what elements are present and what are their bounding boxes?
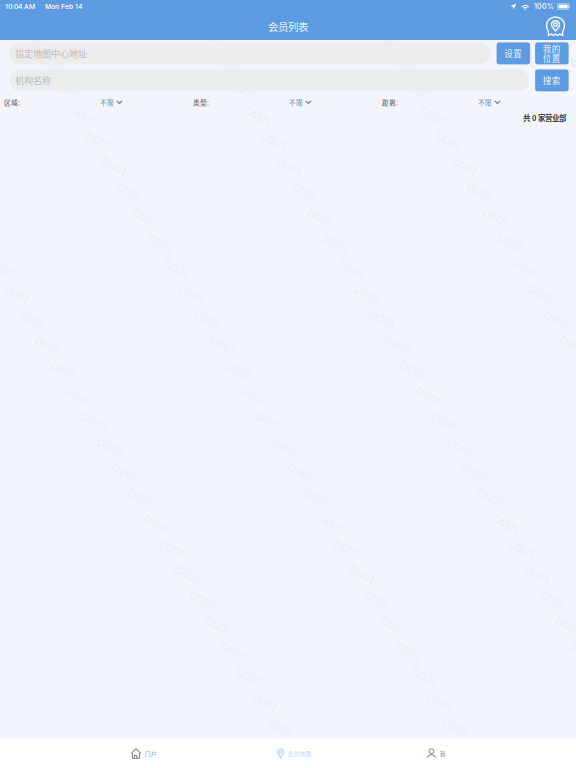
staticText: D001 (419, 109, 445, 122)
staticText: D001 (563, 58, 576, 71)
button[interactable]: 我的 (535, 42, 569, 64)
staticText: 共 0 家营业部 (523, 112, 566, 123)
staticText: D001 (322, 236, 348, 250)
staticText: D001 (244, 109, 270, 122)
staticText: D001 (204, 619, 230, 632)
staticText: D001 (18, 313, 44, 326)
staticText: D001 (34, 338, 60, 352)
staticText: D001 (446, 440, 472, 454)
staticText: D001 (189, 593, 215, 607)
button[interactable]: 会员地图 (277, 739, 312, 768)
staticText: D001 (426, 695, 452, 709)
staticText: D001 (198, 32, 224, 46)
staticText: D001 (173, 568, 199, 581)
staticText: D001 (379, 619, 405, 632)
staticText: D001 (69, 109, 95, 122)
staticText: D001 (251, 695, 277, 709)
staticText: D001 (282, 746, 308, 760)
staticText: D001 (364, 593, 390, 607)
staticText: D001 (220, 644, 246, 658)
staticText: D001 (373, 32, 399, 46)
staticText: D001 (0, 262, 13, 275)
staticText: D001 (235, 670, 261, 683)
staticText: D001 (275, 160, 301, 173)
button[interactable]: 搜索 (535, 69, 569, 91)
staticText: D001 (306, 211, 332, 224)
staticText: D001 (96, 440, 122, 454)
button[interactable]: 区域: (4, 94, 193, 110)
button[interactable]: 距离: (382, 94, 571, 110)
staticText: D001 (481, 211, 507, 224)
staticText: D001 (209, 338, 235, 352)
staticText: D001 (523, 568, 549, 581)
staticText: 搜索 (543, 74, 561, 87)
staticText: 10:04 AM (5, 2, 35, 11)
staticText: D001 (85, 134, 111, 148)
staticText: D001 (127, 491, 153, 505)
staticText: D001 (3, 287, 29, 301)
button[interactable]: 设置 (497, 42, 530, 64)
staticText: D001 (193, 313, 219, 326)
staticText: D001 (291, 185, 317, 199)
staticText: D001 (260, 134, 286, 148)
staticText: D001 (100, 160, 126, 173)
staticText: D001 (23, 32, 49, 46)
staticText: D001 (54, 83, 80, 97)
staticText: D001 (213, 58, 239, 71)
staticText: D001 (441, 721, 467, 734)
staticText: 不限 (478, 98, 492, 107)
staticText: D001 (142, 517, 168, 530)
staticText: D001 (271, 440, 297, 454)
staticText: D001 (512, 262, 538, 275)
staticText: 不限 (289, 98, 303, 107)
staticText: D001 (461, 466, 487, 479)
staticText: D001 (353, 287, 379, 301)
staticText: D001 (286, 466, 312, 479)
staticText: D001 (388, 58, 414, 71)
staticText: 指定地图中心地址 (15, 47, 87, 60)
staticText: D001 (147, 236, 173, 250)
staticText: D001 (528, 287, 554, 301)
staticText: 我 (440, 749, 446, 757)
staticText: 区域: (4, 98, 20, 107)
staticText: D001 (302, 491, 328, 505)
staticText: D001 (508, 542, 534, 556)
staticText: D001 (65, 389, 91, 403)
staticText: 会员列表 (268, 19, 308, 34)
staticText: D001 (131, 211, 157, 224)
staticText: D001 (162, 262, 188, 275)
staticText: D001 (49, 364, 75, 377)
staticText: 距离: (382, 98, 398, 107)
staticText: D001 (240, 389, 266, 403)
staticText: D001 (38, 58, 64, 71)
staticText: D001 (255, 415, 281, 428)
staticText: D001 (466, 185, 492, 199)
staticText: D001 (368, 313, 394, 326)
staticText: 设置 (504, 47, 522, 60)
staticText: D001 (492, 517, 518, 530)
staticText: 类型: (193, 98, 209, 107)
staticText: D001 (178, 287, 204, 301)
staticText: D001 (348, 568, 374, 581)
staticText: D001 (410, 670, 436, 683)
staticText: D001 (415, 389, 441, 403)
button[interactable]: 类型: (193, 94, 382, 110)
button[interactable]: My location (545, 16, 566, 37)
staticText: D001 (399, 364, 425, 377)
staticText: D001 (477, 491, 503, 505)
staticText: D001 (559, 338, 576, 352)
staticText: D001 (116, 185, 142, 199)
staticText: D001 (548, 32, 574, 46)
staticText: D001 (333, 542, 359, 556)
button[interactable]: 我 (427, 739, 446, 768)
staticText: D001 (266, 721, 292, 734)
staticText: 机构名称 (15, 74, 51, 87)
staticText: 100% (534, 2, 554, 11)
staticText: D001 (543, 313, 569, 326)
staticText: D001 (430, 415, 456, 428)
button[interactable]: 门户 (130, 739, 157, 768)
staticText: D001 (395, 644, 421, 658)
staticText: D001 (404, 83, 430, 97)
staticText: D001 (337, 262, 363, 275)
